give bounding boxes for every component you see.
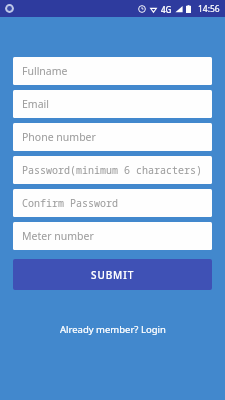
staticText: Password(minimum 6 characters) bbox=[22, 163, 202, 177]
button[interactable]: Password(minimum 6 characters) bbox=[13, 156, 212, 184]
staticText: SUBMIT bbox=[91, 268, 135, 282]
staticText: Phone number bbox=[22, 130, 96, 144]
staticText: 14:56 bbox=[198, 3, 220, 15]
staticText: Email bbox=[22, 97, 49, 111]
staticText: Fullname bbox=[22, 64, 68, 78]
button[interactable]: SUBMIT bbox=[13, 259, 212, 290]
button[interactable]: Email bbox=[13, 90, 212, 118]
staticText: Confirm Password bbox=[22, 196, 118, 210]
staticText: Meter number bbox=[22, 229, 94, 243]
button[interactable]: Already member? Login bbox=[50, 319, 176, 340]
button[interactable]: Fullname bbox=[13, 57, 212, 85]
staticText: Already member? Login bbox=[60, 323, 166, 336]
button[interactable]: Phone number bbox=[13, 123, 212, 151]
button[interactable]: Meter number bbox=[13, 222, 212, 250]
staticText: 4G bbox=[161, 4, 172, 15]
button[interactable]: Confirm Password bbox=[13, 189, 212, 217]
